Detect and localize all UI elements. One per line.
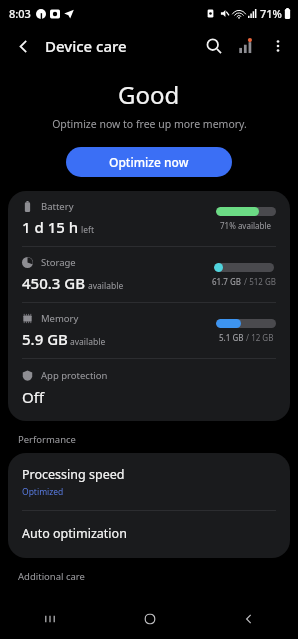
staticText: Memory: [41, 312, 79, 325]
staticText: / 12 GB: [244, 332, 274, 343]
staticText: left: [81, 224, 94, 236]
staticText: Good: [118, 78, 180, 111]
button[interactable]: Back: [199, 599, 298, 639]
staticText: Optimize now to free up more memory.: [52, 117, 247, 131]
staticText: Device care: [45, 36, 127, 56]
button[interactable]: Memory: [8, 303, 290, 358]
button[interactable]: Diagnostics: [230, 30, 262, 62]
staticText: Off: [22, 387, 45, 407]
button[interactable]: Optimize now: [66, 147, 232, 177]
staticText: available: [70, 336, 106, 348]
staticText: Battery: [41, 200, 74, 213]
button[interactable]: Processing speed: [8, 453, 290, 510]
button[interactable]: Battery: [8, 191, 290, 246]
staticText: Optimize now: [109, 154, 189, 170]
staticText: 5.1 GB: [219, 332, 244, 343]
staticText: Additional care: [18, 570, 85, 583]
button[interactable]: Storage: [8, 247, 290, 302]
button[interactable]: App protection: [8, 359, 290, 421]
staticText: App protection: [41, 369, 108, 382]
button[interactable]: More options: [262, 30, 294, 62]
staticText: 71% available: [220, 220, 272, 231]
button[interactable]: Back: [6, 29, 40, 63]
button[interactable]: Search: [198, 30, 230, 62]
staticText: 450.3 GB: [22, 273, 86, 293]
staticText: Storage: [41, 256, 76, 269]
staticText: available: [88, 280, 124, 292]
button[interactable]: Auto optimization: [8, 511, 290, 558]
staticText: 71%: [260, 6, 282, 21]
button[interactable]: Home: [100, 599, 199, 639]
staticText: Processing speed: [22, 466, 125, 483]
staticText: Auto optimization: [22, 525, 127, 542]
staticText: 5.9 GB: [22, 329, 68, 349]
staticText: 8:03: [9, 6, 31, 21]
staticText: / 512 GB: [242, 276, 276, 287]
staticText: Optimized: [22, 486, 64, 498]
staticText: 61.7 GB: [212, 276, 242, 287]
staticText: 1 d 15 h: [22, 217, 79, 237]
staticText: Performance: [18, 433, 76, 446]
button[interactable]: Recents: [0, 599, 100, 639]
